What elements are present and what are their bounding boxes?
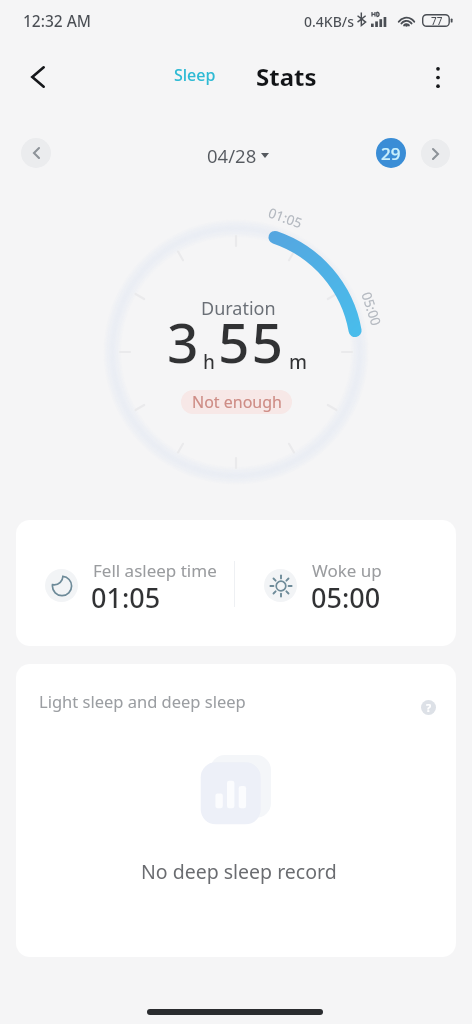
staticText: h xyxy=(203,349,215,375)
staticText: Stats xyxy=(256,60,317,93)
button[interactable]: 04/28 xyxy=(201,141,275,170)
button[interactable]: Stats xyxy=(250,58,323,95)
staticText: Sleep xyxy=(174,64,216,86)
staticText: 3 xyxy=(167,304,199,379)
button[interactable]: More options xyxy=(416,55,460,99)
staticText: 01:05 xyxy=(91,579,161,616)
staticText: 55 xyxy=(218,304,285,379)
button[interactable]: Fell asleep time xyxy=(16,520,456,646)
staticText: Not enough xyxy=(192,391,282,413)
staticText: Light sleep and deep sleep xyxy=(39,690,246,712)
button[interactable]: Back xyxy=(16,55,60,99)
staticText: Woke up xyxy=(312,559,382,582)
button[interactable]: Help xyxy=(421,700,436,715)
staticText: ? xyxy=(426,700,432,715)
button[interactable]: 29 xyxy=(376,138,406,168)
staticText: 77 xyxy=(431,14,443,27)
staticText: 05:00 xyxy=(357,290,385,328)
staticText: 04/28 xyxy=(207,143,257,168)
staticText: Duration xyxy=(201,296,276,321)
button[interactable]: Previous day xyxy=(21,138,51,168)
staticText: 01:05 xyxy=(266,204,305,232)
staticText: 0.4KB/s xyxy=(304,12,355,31)
staticText: 05:00 xyxy=(311,579,381,616)
staticText: m xyxy=(289,349,307,375)
staticText: No deep sleep record xyxy=(141,858,337,885)
button[interactable]: Sleep xyxy=(168,62,222,88)
staticText: 12:32 AM xyxy=(23,10,92,31)
staticText: 29 xyxy=(381,142,401,165)
button[interactable]: Next day xyxy=(421,139,450,168)
staticText: Fell asleep time xyxy=(93,559,217,582)
